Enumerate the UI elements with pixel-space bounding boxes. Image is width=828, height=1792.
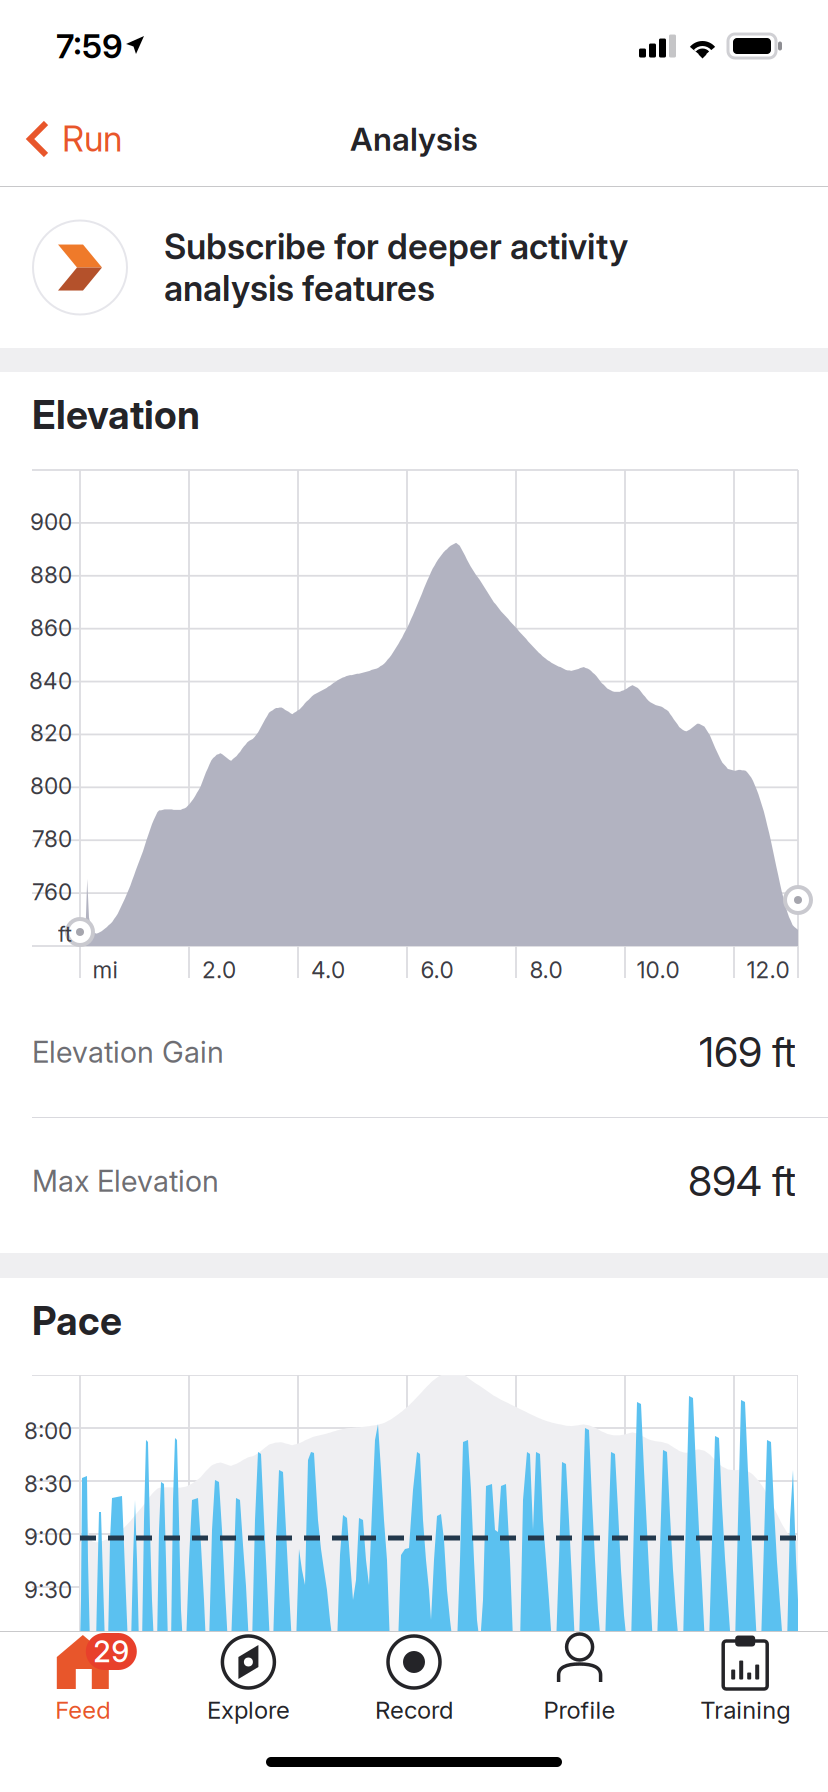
staticText: 8.0 (529, 956, 562, 984)
staticText: 9:00 (24, 1523, 72, 1551)
staticText: Record (375, 1695, 453, 1724)
staticText: 29 (93, 1634, 129, 1669)
staticText: 760 (32, 878, 72, 906)
staticText: 820 (30, 719, 72, 747)
staticText: 900 (30, 508, 72, 536)
staticText: 6.0 (420, 956, 453, 984)
staticText: 12.0 (746, 956, 789, 984)
staticText: Feed (55, 1695, 110, 1724)
staticText: 800 (30, 772, 72, 800)
button[interactable]: Run (0, 92, 142, 186)
button[interactable]: 29 (0, 1633, 166, 1725)
staticText: Analysis (350, 120, 478, 158)
staticText: 10.0 (636, 956, 679, 984)
staticText: Subscribe for deeper activity analysis f… (164, 226, 628, 309)
staticText: mi (92, 956, 117, 984)
staticText: 8:00 (24, 1417, 72, 1445)
staticText: Elevation Gain (32, 1034, 224, 1070)
staticText: Run (62, 118, 122, 160)
button[interactable]: Training (662, 1633, 828, 1725)
staticText: 8:30 (24, 1470, 72, 1498)
button[interactable]: Subscribe for deeper activity analysis f… (0, 187, 828, 348)
staticText: 9:30 (24, 1576, 72, 1604)
button[interactable]: Explore (166, 1633, 331, 1725)
staticText: 880 (30, 561, 72, 589)
staticText: Pace (32, 1298, 122, 1344)
staticText: 2.0 (202, 956, 236, 984)
staticText: Training (700, 1695, 790, 1724)
staticText: Explore (207, 1695, 290, 1724)
button[interactable]: Record (331, 1633, 497, 1725)
staticText: Max Elevation (32, 1163, 219, 1199)
staticText: 7:59 (56, 26, 123, 66)
staticText: 860 (30, 614, 72, 642)
staticText: ft (58, 921, 72, 947)
staticText: 169 ft (699, 1027, 796, 1077)
button[interactable]: Profile (497, 1633, 662, 1725)
staticText: 894 ft (688, 1156, 796, 1206)
staticText: 780 (32, 825, 72, 853)
staticText: 840 (29, 667, 72, 695)
staticText: Profile (544, 1695, 616, 1724)
staticText: 4.0 (311, 956, 345, 984)
staticText: Elevation (32, 392, 200, 438)
